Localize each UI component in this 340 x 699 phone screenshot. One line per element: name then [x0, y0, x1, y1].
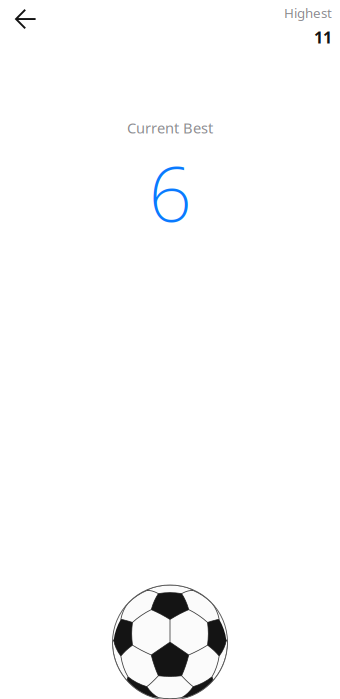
staticText: Current Best: [127, 118, 213, 137]
button[interactable]: Highest: [272, 0, 340, 56]
staticText: 11: [314, 27, 332, 48]
staticText: 6: [148, 141, 191, 242]
staticText: Highest: [284, 4, 332, 22]
button[interactable]: Back: [0, 0, 49, 39]
